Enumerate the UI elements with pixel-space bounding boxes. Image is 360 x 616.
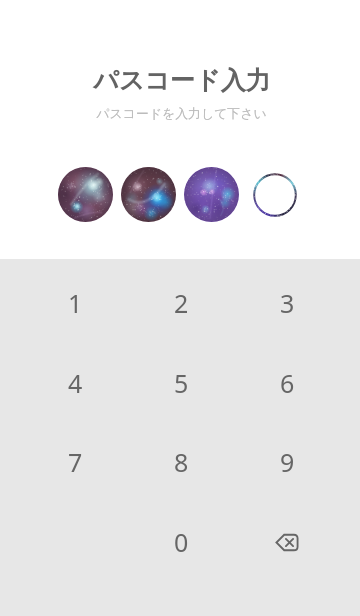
button[interactable]: 7 <box>22 422 128 502</box>
button[interactable]: 2 <box>128 263 234 343</box>
button[interactable]: 9 <box>234 422 340 502</box>
button[interactable]: 4 <box>22 343 128 423</box>
button[interactable]: 0 <box>128 502 234 582</box>
staticText: パスコード入力 <box>93 65 271 96</box>
staticText: 3 <box>280 286 295 320</box>
button[interactable]: 3 <box>234 263 340 343</box>
staticText: 1 <box>68 286 83 320</box>
staticText: 4 <box>68 366 83 400</box>
button[interactable]: 6 <box>234 343 340 423</box>
staticText: 9 <box>280 445 295 479</box>
staticText: 8 <box>174 445 189 479</box>
button[interactable]: 1 <box>22 263 128 343</box>
staticText: 6 <box>280 366 295 400</box>
other: Delete <box>260 515 314 569</box>
staticText: 2 <box>174 286 189 320</box>
button[interactable]: 8 <box>128 422 234 502</box>
staticText: 5 <box>174 366 189 400</box>
staticText: パスコードを入力して下さい <box>96 106 267 122</box>
staticText: 7 <box>68 445 83 479</box>
staticText: 0 <box>174 525 189 559</box>
button[interactable]: 5 <box>128 343 234 423</box>
button[interactable]: Delete <box>234 502 340 582</box>
